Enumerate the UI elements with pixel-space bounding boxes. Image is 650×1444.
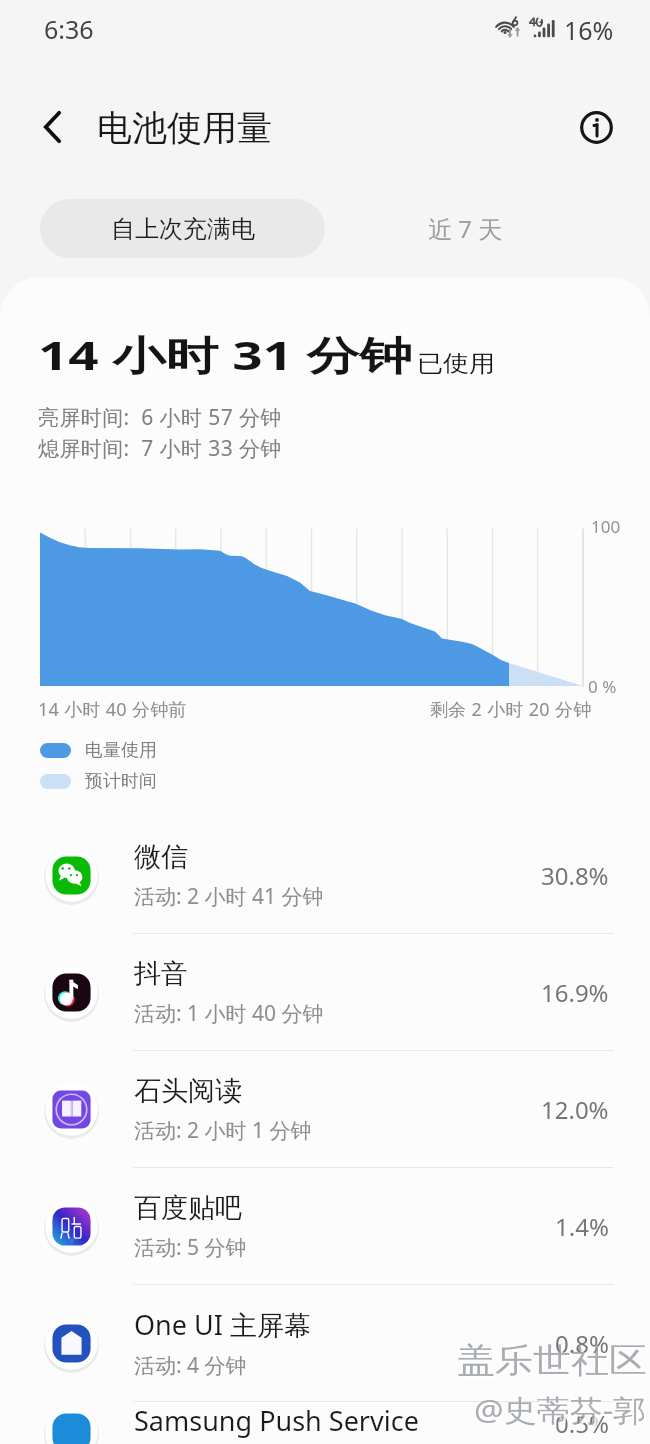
button[interactable]: 抖音 xyxy=(0,934,650,1050)
staticText: 盖乐世社区 xyxy=(459,1341,649,1383)
staticText: 活动: 5 分钟 xyxy=(134,1233,247,1262)
staticText: 活动: 4 分钟 xyxy=(134,1351,247,1380)
staticText: 活动: 2 小时 1 分钟 xyxy=(134,1116,312,1145)
staticText: @史蒂芬-郭 xyxy=(476,1391,649,1432)
staticText: 16% xyxy=(564,13,614,47)
button[interactable]: One UI 主屏幕 xyxy=(0,1285,650,1401)
staticText: 12.0% xyxy=(541,1093,609,1126)
button[interactable]: 自上次充满电 xyxy=(40,199,325,258)
staticText: 熄屏时间: 7 小时 33 分钟 xyxy=(38,434,282,463)
staticText: One UI 主屏幕 xyxy=(134,1306,311,1343)
staticText: 0.5% xyxy=(555,1407,609,1440)
staticText: 活动: 1 小时 40 分钟 xyxy=(134,999,324,1028)
staticText: 预计时间 xyxy=(85,770,157,793)
staticText: 亮屏时间: 6 小时 57 分钟 xyxy=(38,403,282,432)
staticText: 微信 xyxy=(134,840,188,874)
staticText: 30.8% xyxy=(541,859,609,892)
button[interactable]: 百度贴吧 xyxy=(0,1168,650,1284)
staticText: 100 xyxy=(591,515,621,538)
staticText: 盖乐世社区 xyxy=(457,1339,647,1381)
staticText: 14 小时 40 分钟前 xyxy=(38,697,187,722)
staticText: 已使用 xyxy=(417,349,495,378)
staticText: 活动: 2 小时 41 分钟 xyxy=(134,882,324,911)
staticText: 电池使用量 xyxy=(97,106,272,150)
button[interactable]: 石头阅读 xyxy=(0,1051,650,1167)
staticText: 1.4% xyxy=(555,1210,609,1243)
staticText: 自上次充满电 xyxy=(111,214,255,244)
staticText: 抖音 xyxy=(134,957,188,991)
button[interactable]: Samsung Push Service xyxy=(0,1402,650,1444)
staticText: 石头阅读 xyxy=(134,1074,242,1108)
button[interactable]: 微信 xyxy=(0,817,650,933)
button[interactable]: Back xyxy=(24,99,80,155)
staticText: @史蒂芬-郭 xyxy=(474,1389,647,1430)
staticText: 电量使用 xyxy=(85,739,157,762)
staticText: 16.9% xyxy=(541,976,609,1009)
staticText: 近 7 天 xyxy=(428,212,503,245)
staticText: 百度贴吧 xyxy=(134,1191,242,1225)
staticText: 6:36 xyxy=(44,12,94,46)
staticText: Samsung Push Service xyxy=(134,1402,419,1439)
button[interactable]: 近 7 天 xyxy=(365,199,565,258)
staticText: 0 % xyxy=(588,675,617,698)
staticText: 14 小时 31 分钟 xyxy=(38,327,413,381)
staticText: 剩余 2 小时 20 分钟 xyxy=(430,697,592,722)
staticText: 0.8% xyxy=(555,1327,609,1360)
button[interactable]: Information xyxy=(568,99,624,155)
